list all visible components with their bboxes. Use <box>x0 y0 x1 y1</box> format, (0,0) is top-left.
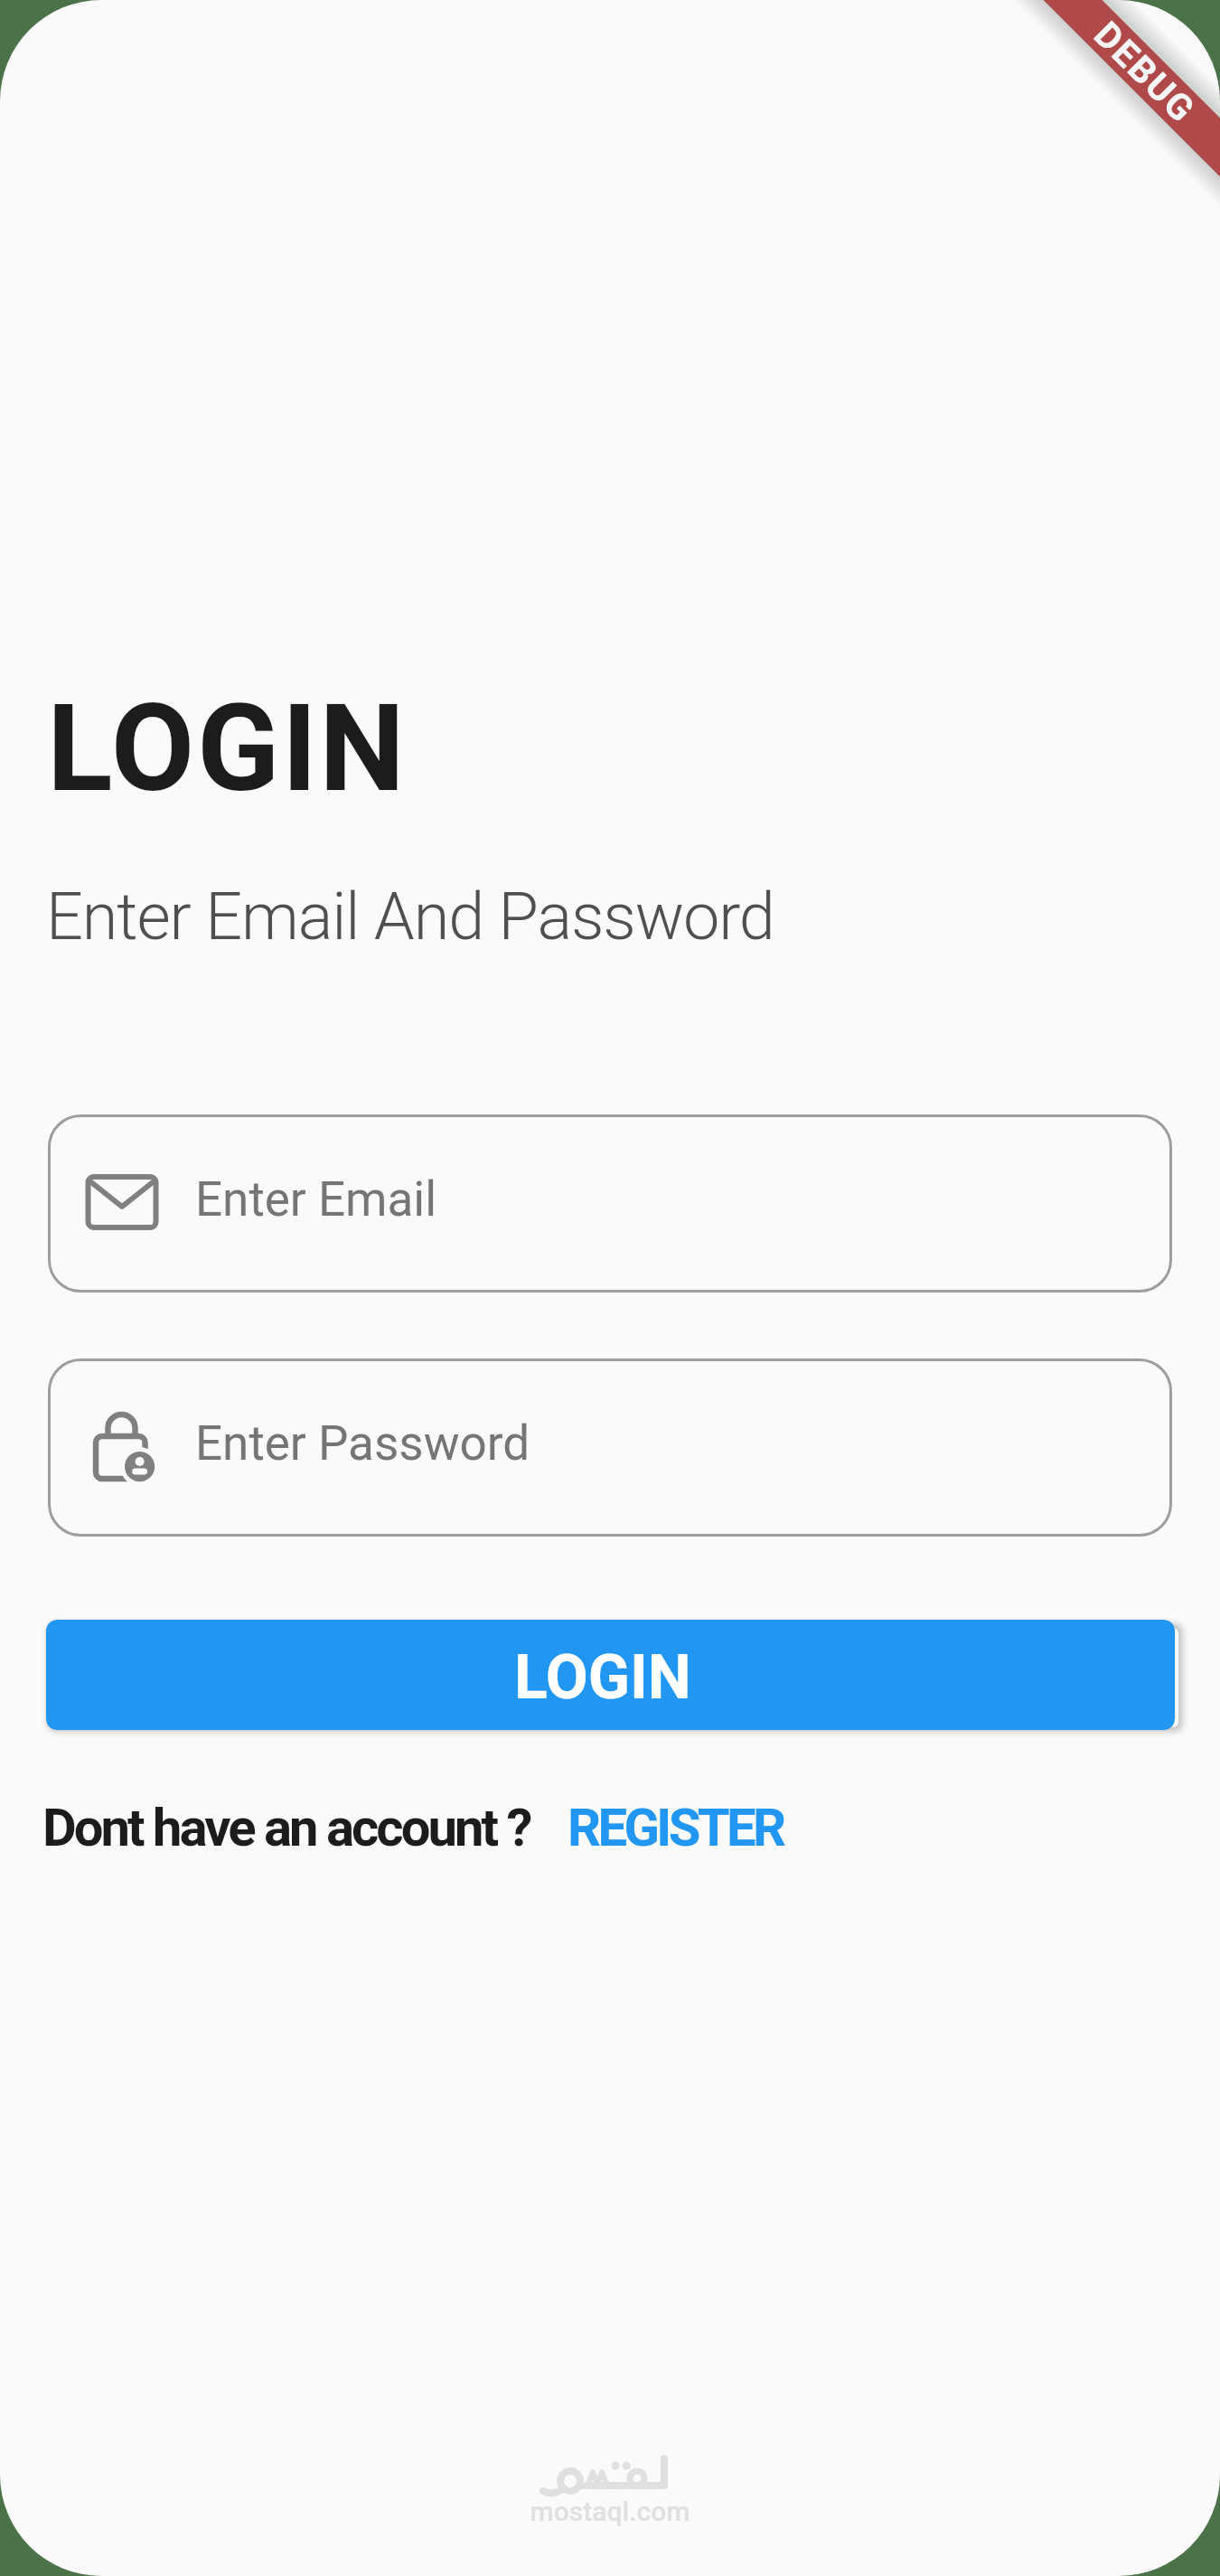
staticText: Enter Email And Password <box>46 879 774 954</box>
staticText: LOGIN <box>514 1641 691 1714</box>
staticText: Dont have an account ? <box>42 1797 530 1858</box>
staticText: LOGIN <box>47 678 408 820</box>
button[interactable]: LOGIN <box>46 1620 1175 1730</box>
staticText: DEBUG <box>1086 13 1204 131</box>
staticText: Enter Password <box>195 1415 530 1471</box>
staticText: Enter Email <box>195 1171 437 1227</box>
button[interactable]: Enter Password <box>48 1359 1172 1537</box>
staticText: mostaql.com <box>0 2496 1220 2527</box>
button[interactable]: REGISTER <box>568 1797 784 1858</box>
button[interactable]: Enter Email <box>48 1114 1172 1293</box>
